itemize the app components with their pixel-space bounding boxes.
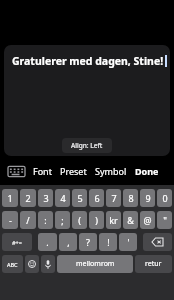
staticText: ABC — [7, 261, 18, 268]
staticText: mellomrom — [76, 259, 115, 269]
staticText: Align: Left — [71, 141, 103, 150]
button[interactable]: Symbol — [94, 163, 128, 179]
staticText: #+= — [12, 239, 22, 246]
button[interactable]: ! — [99, 233, 117, 251]
staticText: 3 — [43, 192, 49, 204]
button[interactable]: ; — [55, 211, 70, 229]
button[interactable]: ABC — [2, 255, 23, 273]
staticText: 0 — [162, 192, 168, 204]
button[interactable]: @ — [140, 211, 155, 229]
button[interactable]: ' — [119, 233, 137, 251]
staticText: ? — [86, 236, 90, 248]
button[interactable]: , — [59, 233, 77, 251]
staticText: Gratulerer med dagen, Stine! — [12, 54, 164, 68]
button[interactable]: 0 — [157, 189, 172, 207]
button[interactable]: / — [20, 211, 36, 229]
button[interactable]: 1 — [2, 189, 18, 207]
staticText: ; — [61, 214, 64, 226]
button[interactable]: 8 — [123, 189, 138, 207]
staticText: retur — [145, 259, 162, 269]
staticText: Done — [135, 165, 159, 177]
staticText: : — [44, 214, 47, 226]
button[interactable]: kr — [106, 211, 121, 229]
staticText: 5 — [77, 192, 83, 204]
button[interactable]: : — [38, 211, 53, 229]
staticText: Preset — [60, 165, 87, 177]
button[interactable]: 3 — [38, 189, 53, 207]
button[interactable]: mellomrom — [57, 255, 133, 273]
button[interactable]: Dictate — [41, 255, 55, 273]
staticText: ) — [95, 214, 98, 226]
staticText: ' — [127, 236, 130, 248]
staticText: - — [9, 214, 12, 226]
staticText: / — [26, 214, 30, 226]
button[interactable]: Done — [134, 163, 160, 179]
button[interactable]: Keyboard — [8, 165, 25, 178]
staticText: Font — [33, 165, 52, 177]
button[interactable]: . — [38, 233, 57, 251]
staticText: kr — [109, 214, 118, 226]
staticText: 4 — [60, 192, 66, 204]
staticText: 1 — [7, 192, 13, 204]
staticText: 7 — [111, 192, 117, 204]
button[interactable]: 9 — [140, 189, 155, 207]
staticText: Symbol — [95, 165, 127, 177]
button[interactable]: #+= — [2, 233, 32, 251]
staticText: 9 — [145, 192, 151, 204]
button[interactable]: ( — [72, 211, 87, 229]
button[interactable]: 4 — [55, 189, 70, 207]
button[interactable]: ) — [89, 211, 104, 229]
button[interactable]: - — [2, 211, 18, 229]
button[interactable]: Gratulerer med dagen, Stine! — [4, 45, 170, 156]
staticText: 6 — [94, 192, 100, 204]
staticText: ! — [107, 236, 110, 248]
staticText: 8 — [128, 192, 134, 204]
staticText: " — [163, 214, 167, 226]
staticText: , — [67, 236, 70, 248]
staticText: . — [46, 236, 49, 248]
button[interactable]: Preset — [59, 163, 88, 179]
button[interactable]: Font — [32, 163, 53, 179]
staticText: & — [127, 214, 134, 226]
button[interactable]: ? — [79, 233, 97, 251]
button[interactable]: Backspace — [143, 233, 172, 251]
staticText: ( — [78, 214, 81, 226]
button[interactable]: retur — [135, 255, 172, 273]
button[interactable]: 2 — [20, 189, 36, 207]
staticText: 2 — [25, 192, 31, 204]
button[interactable]: Emoji — [25, 255, 39, 273]
button[interactable]: 5 — [72, 189, 87, 207]
button[interactable]: " — [157, 211, 172, 229]
button[interactable]: 6 — [89, 189, 104, 207]
button[interactable]: & — [123, 211, 138, 229]
button[interactable]: 7 — [106, 189, 121, 207]
button[interactable]: Align: Left — [62, 138, 112, 153]
staticText: @ — [143, 214, 152, 226]
